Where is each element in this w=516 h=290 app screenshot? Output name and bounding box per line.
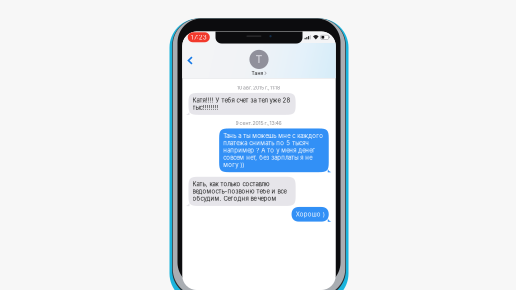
staticText: 17:23 — [191, 33, 207, 41]
button[interactable]: Back — [182, 47, 206, 73]
staticText: Катя!!!! У тебя счет за тел уже 28 тыс!!… — [192, 97, 290, 111]
staticText: 9 сент. 2015 г., 13:46 — [236, 120, 282, 126]
button[interactable]: T — [249, 45, 269, 76]
staticText: 10 авг. 2015 г., 11:18 — [237, 85, 280, 91]
staticText: T — [255, 53, 262, 66]
staticText: Хорошо ) — [296, 211, 325, 218]
staticText: Таня — [251, 70, 263, 76]
staticText: Тань а ты можешь мне с каждого платежа с… — [223, 132, 323, 168]
staticText: Кать, как только составлю ведомость-позв… — [192, 180, 286, 202]
